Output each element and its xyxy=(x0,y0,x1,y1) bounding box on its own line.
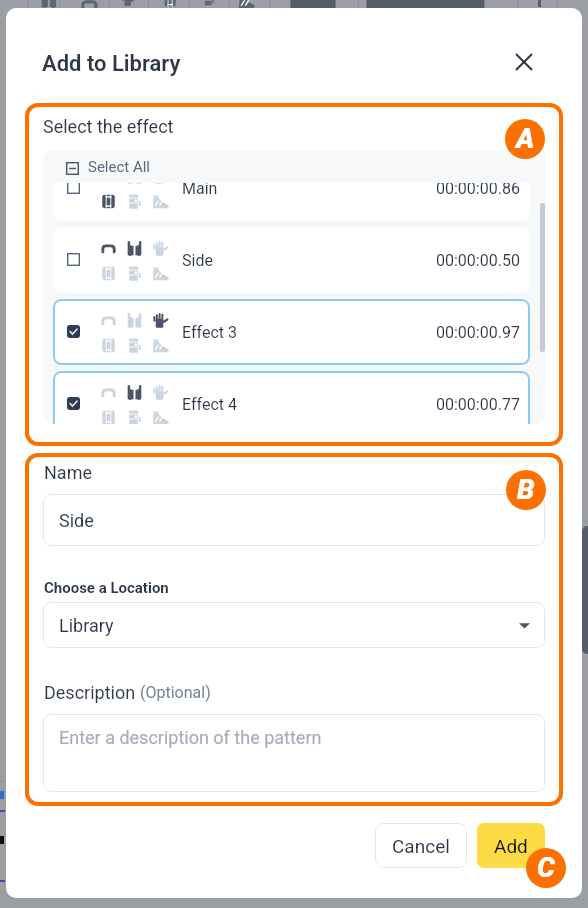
button[interactable]: Enter a description of the pattern xyxy=(43,714,545,792)
button[interactable]: Side xyxy=(43,494,545,546)
staticText: Select the effect xyxy=(43,116,174,137)
staticText: Cancel xyxy=(392,835,450,857)
staticText: Side xyxy=(182,251,213,270)
staticText: Enter a description of the pattern xyxy=(59,727,322,748)
staticText: Add xyxy=(494,835,528,857)
button[interactable]: Add xyxy=(477,823,545,868)
button[interactable]: Effect 4 xyxy=(53,371,530,424)
button[interactable]: Library xyxy=(43,602,545,648)
staticText: 00:00:00.97 xyxy=(436,323,520,342)
button[interactable]: Select All xyxy=(43,150,546,183)
staticText: 00:00:00.50 xyxy=(436,251,520,270)
button[interactable]: Side xyxy=(53,227,530,293)
staticText: Name xyxy=(44,462,92,483)
staticText: Description xyxy=(44,682,140,703)
staticText: A xyxy=(516,122,535,155)
button[interactable]: Close xyxy=(496,34,551,89)
button[interactable]: Cancel xyxy=(375,823,467,868)
staticText: Select All xyxy=(88,158,151,176)
staticText: Library xyxy=(59,615,114,636)
staticText: (Optional) xyxy=(140,683,211,702)
staticText: Effect 3 xyxy=(182,323,237,342)
staticText: 00:00:00.77 xyxy=(436,395,520,414)
staticText: Choose a Location xyxy=(44,579,169,597)
staticText: 00:00:00.86 xyxy=(436,179,520,198)
button[interactable]: Main xyxy=(53,155,530,221)
staticText: B xyxy=(517,473,535,506)
button[interactable]: Effect 3 xyxy=(53,299,530,365)
staticText: Add to Library xyxy=(42,51,181,77)
staticText: Effect 4 xyxy=(182,395,237,414)
staticText: Main xyxy=(182,179,218,198)
staticText: C xyxy=(537,851,555,884)
staticText: Side xyxy=(59,510,94,531)
